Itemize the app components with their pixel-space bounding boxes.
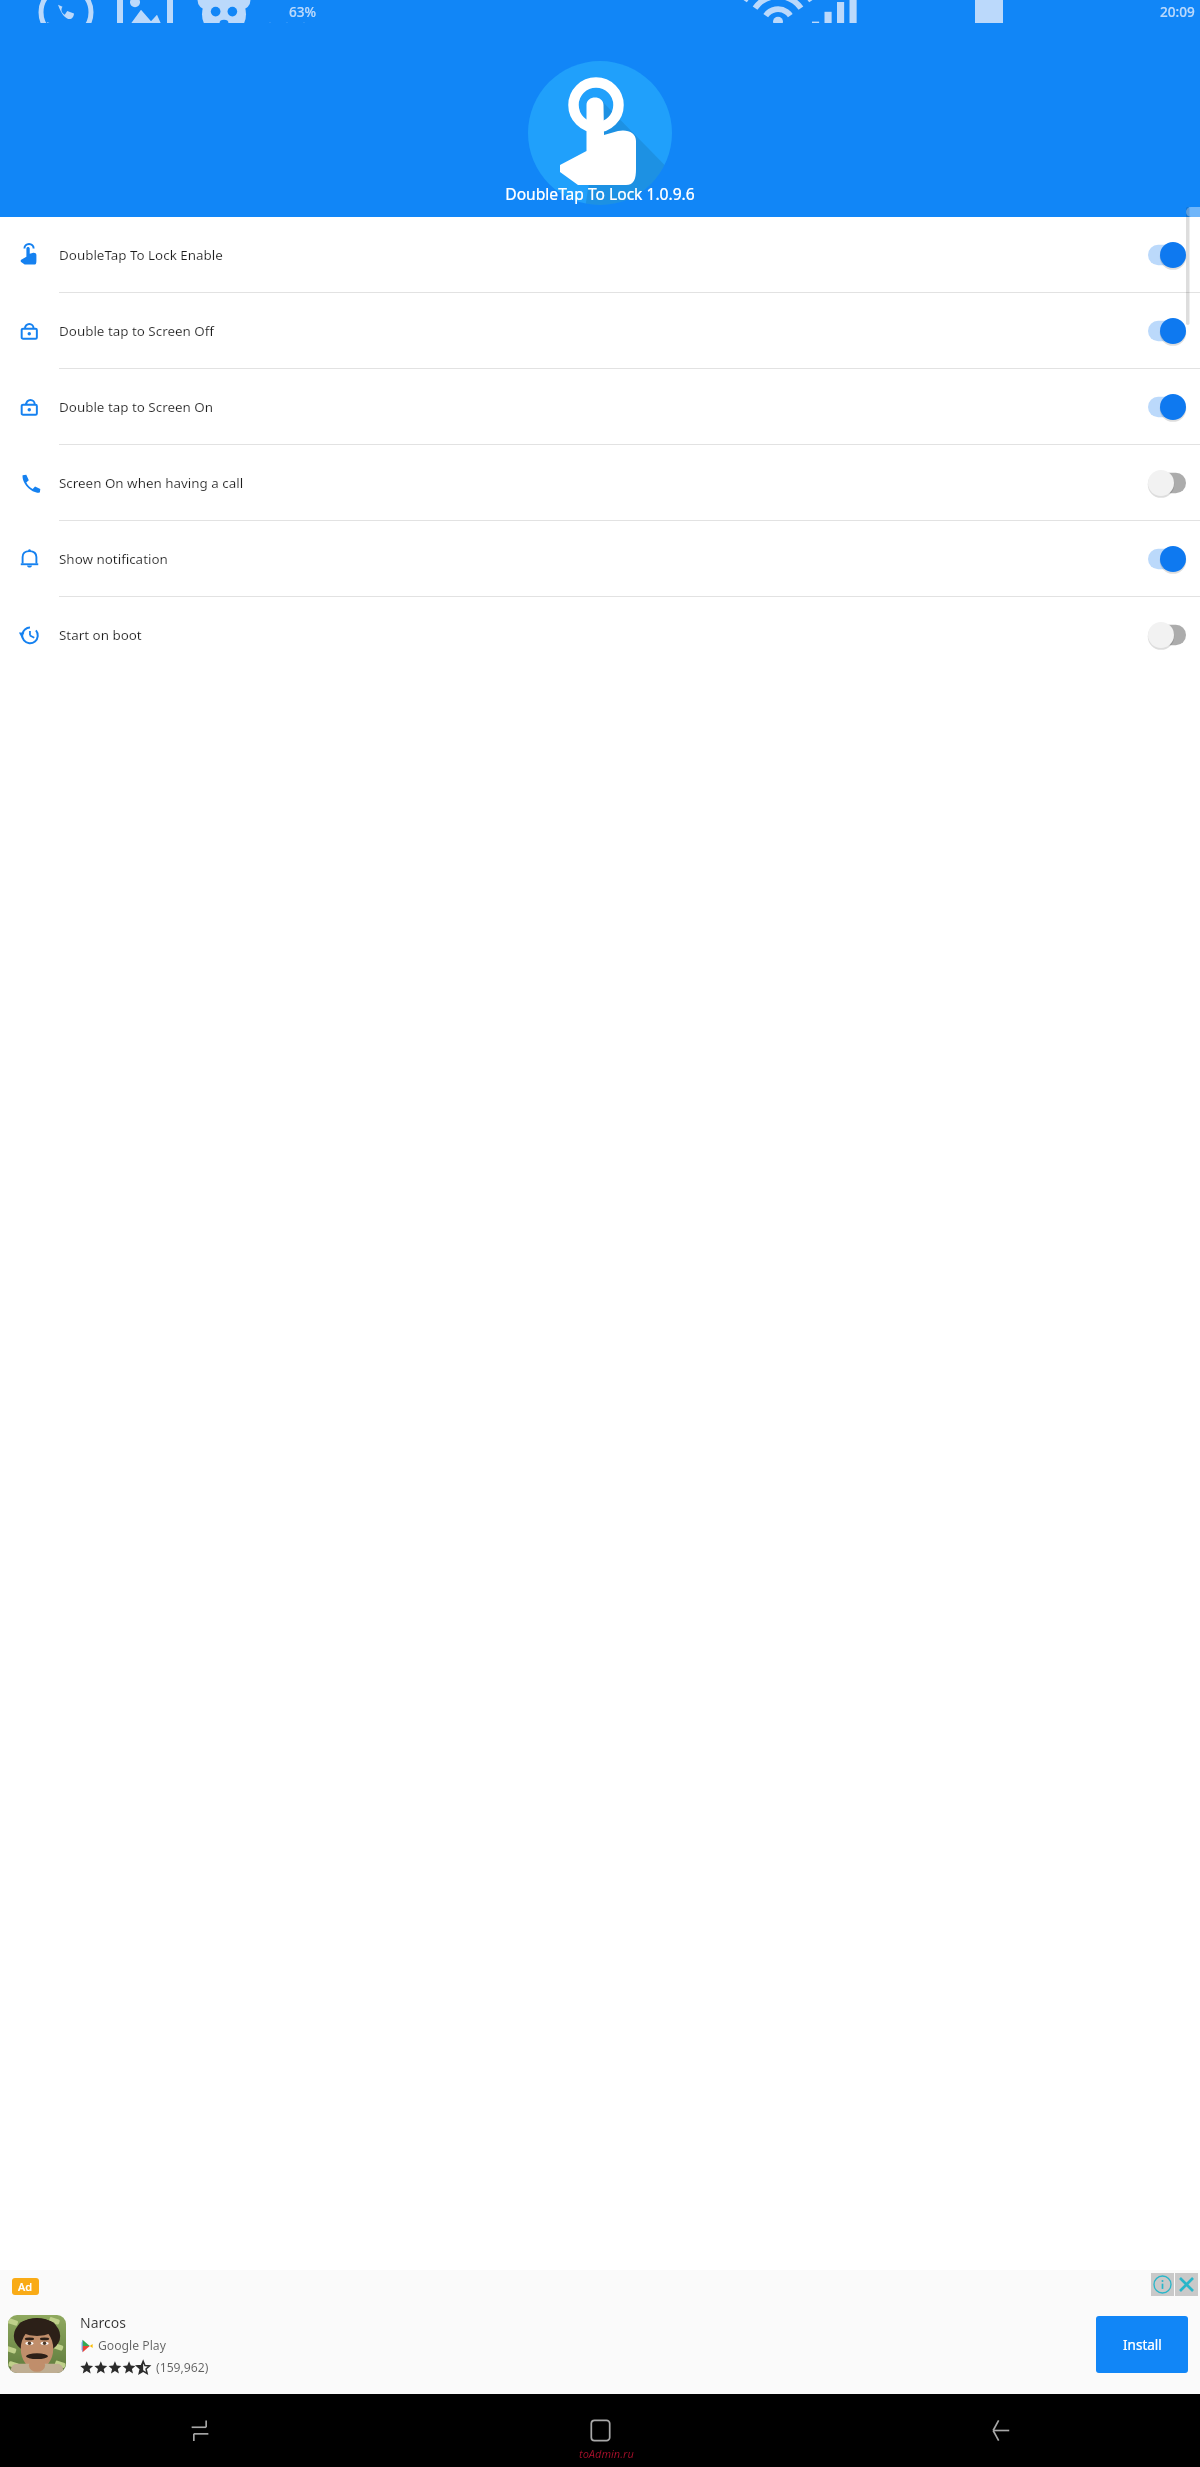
staticText: Ad [18,2279,33,2294]
button[interactable]: Ad info [1151,2273,1174,2296]
staticText: Double tap to Screen Off [59,322,1148,340]
button[interactable]: Toggle on [1148,318,1186,344]
button[interactable]: Double tap to Screen Off [0,293,1200,368]
button[interactable]: Install [1096,2316,1188,2373]
button[interactable]: Toggle on [1148,242,1186,268]
staticText: DoubleTap To Lock 1.0.9.6 [0,183,1200,204]
staticText: Google Play [98,2337,166,2354]
button[interactable]: Toggle on [1148,546,1186,572]
button[interactable]: Recents [0,2394,400,2467]
button[interactable]: Close ad [1175,2273,1198,2296]
staticText: 63% [289,2,317,21]
button[interactable]: Back [800,2394,1200,2467]
button[interactable]: Home [400,2394,800,2467]
staticText: Install [1123,2336,1162,2354]
staticText: Double tap to Screen On [59,398,1148,416]
button[interactable]: Toggle off [1148,622,1186,648]
staticText: Screen On when having a call [59,474,1148,492]
button[interactable]: Screen On when having a call [0,445,1200,520]
staticText: DoubleTap To Lock Enable [59,246,1148,264]
staticText: Start on boot [59,626,1148,644]
staticText: (159,962) [156,2359,209,2376]
button[interactable]: Toggle on [1148,394,1186,420]
button[interactable]: DoubleTap To Lock Enable [0,217,1200,292]
staticText: 20:09 [1160,2,1195,21]
staticText: toAdmin.ru [579,2446,634,2461]
button[interactable]: Double tap to Screen On [0,369,1200,444]
staticText: Show notification [59,550,1148,568]
button[interactable]: Show notification [0,521,1200,596]
button[interactable]: Toggle off [1148,470,1186,496]
staticText: Narcos [80,2313,126,2332]
button[interactable]: Start on boot [0,597,1200,672]
